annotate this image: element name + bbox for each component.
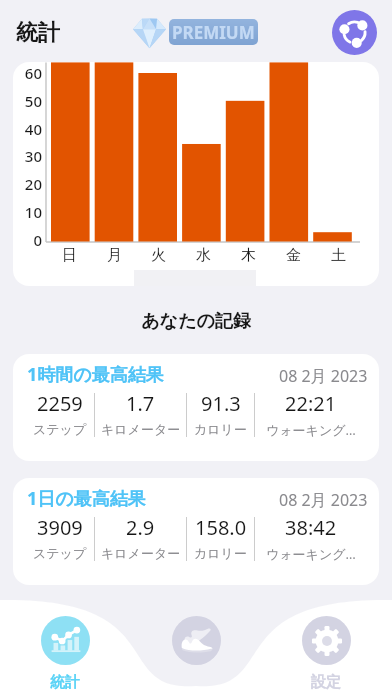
staticText: 2259 <box>37 390 83 417</box>
staticText: 1時間の最高結果 <box>27 362 164 387</box>
staticText: キロメーター <box>101 545 181 561</box>
button[interactable]: 統計 <box>32 616 98 692</box>
staticText: 20 <box>13 174 42 194</box>
staticText: ウォーキング… <box>266 421 356 439</box>
staticText: カロリー <box>194 421 247 437</box>
staticText: 1.7 <box>126 390 155 417</box>
button[interactable]: PREMIUM <box>169 19 258 45</box>
staticText: PREMIUM <box>172 21 255 44</box>
staticText: 60 <box>13 63 42 83</box>
button[interactable]: 設定 <box>293 616 359 692</box>
staticText: ステップ <box>33 421 87 437</box>
staticText: 統計 <box>16 19 60 47</box>
staticText: ステップ <box>33 545 87 561</box>
staticText: 30 <box>13 146 42 166</box>
staticText: 月 <box>95 246 134 265</box>
staticText: 設定 <box>311 673 341 692</box>
button[interactable]: Share <box>332 10 377 55</box>
staticText: 木 <box>229 246 268 265</box>
staticText: 40 <box>13 119 42 139</box>
staticText: 1日の最高結果 <box>27 486 146 511</box>
button[interactable]: 1時間の最高結果 <box>13 354 379 461</box>
staticText: ウォーキング… <box>266 545 356 563</box>
staticText: 水 <box>184 246 223 265</box>
staticText: 2.9 <box>126 514 155 541</box>
staticText: 08 2月 2023 <box>279 489 368 511</box>
staticText: 22:21 <box>285 390 337 417</box>
staticText: 08 2月 2023 <box>279 365 368 387</box>
button[interactable]: Premium <box>132 15 167 49</box>
staticText: 金 <box>274 246 313 265</box>
staticText: カロリー <box>194 545 247 561</box>
staticText: あなたの記録 <box>0 310 392 333</box>
staticText: 158.0 <box>195 514 247 541</box>
staticText: 10 <box>13 202 42 222</box>
button[interactable]: 1日の最高結果 <box>13 478 379 585</box>
staticText: キロメーター <box>101 421 181 437</box>
staticText: 50 <box>13 91 42 111</box>
staticText: 3909 <box>37 514 83 541</box>
staticText: 日 <box>50 246 89 265</box>
staticText: 0 <box>13 230 42 250</box>
staticText: 火 <box>139 246 178 265</box>
button[interactable]: Activity <box>163 616 229 665</box>
staticText: 土 <box>319 246 358 265</box>
staticText: 統計 <box>50 673 80 692</box>
staticText: 91.3 <box>201 390 241 417</box>
staticText: 38:42 <box>285 514 337 541</box>
